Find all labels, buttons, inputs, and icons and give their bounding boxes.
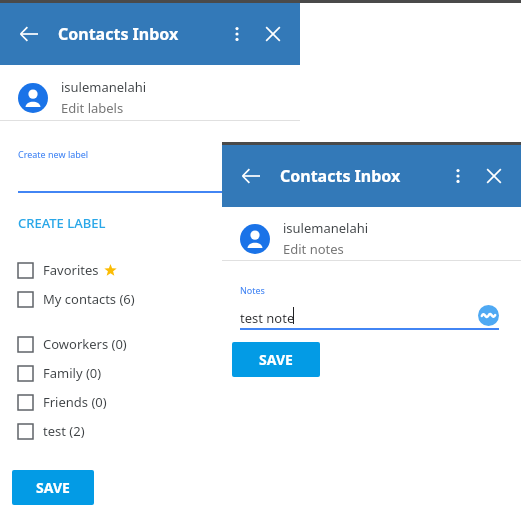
button[interactable]: CREATE LABEL [18,214,106,232]
staticText: Contacts Inbox [280,165,401,187]
button[interactable]: My contacts (6) [0,286,220,312]
staticText: Edit notes [283,240,344,258]
staticText: isulemanelahi [61,78,147,96]
staticText: SAVE [36,478,70,497]
button[interactable]: More options [445,163,471,189]
staticText: SAVE [259,350,293,369]
button[interactable]: Close [481,163,507,189]
staticText: Notes [240,284,265,296]
staticText: Contacts Inbox [58,23,179,45]
staticText: Friends (0) [43,393,107,411]
staticText: test (2) [43,422,85,440]
button[interactable]: More options [224,21,250,47]
button[interactable]: SAVE [232,342,320,377]
button[interactable]: Back [236,161,266,191]
button[interactable]: Back [14,19,44,49]
button[interactable]: Favorites [0,257,220,283]
staticText: isulemanelahi [283,219,369,237]
staticText: Edit labels [61,99,124,117]
button[interactable]: test (2) [0,418,220,444]
button[interactable]: Coworkers (0) [0,331,220,357]
button[interactable]: SAVE [12,470,94,505]
staticText: Create new label [18,148,89,160]
button[interactable]: Friends (0) [0,389,220,415]
staticText: Coworkers (0) [43,335,127,353]
staticText: test note [240,309,295,327]
staticText: Family (0) [43,364,102,382]
staticText: Favorites [43,261,99,279]
button[interactable]: Close [260,21,286,47]
button[interactable]: Family (0) [0,360,220,386]
button[interactable]: Suggestion [478,305,499,326]
staticText: My contacts (6) [43,290,135,308]
